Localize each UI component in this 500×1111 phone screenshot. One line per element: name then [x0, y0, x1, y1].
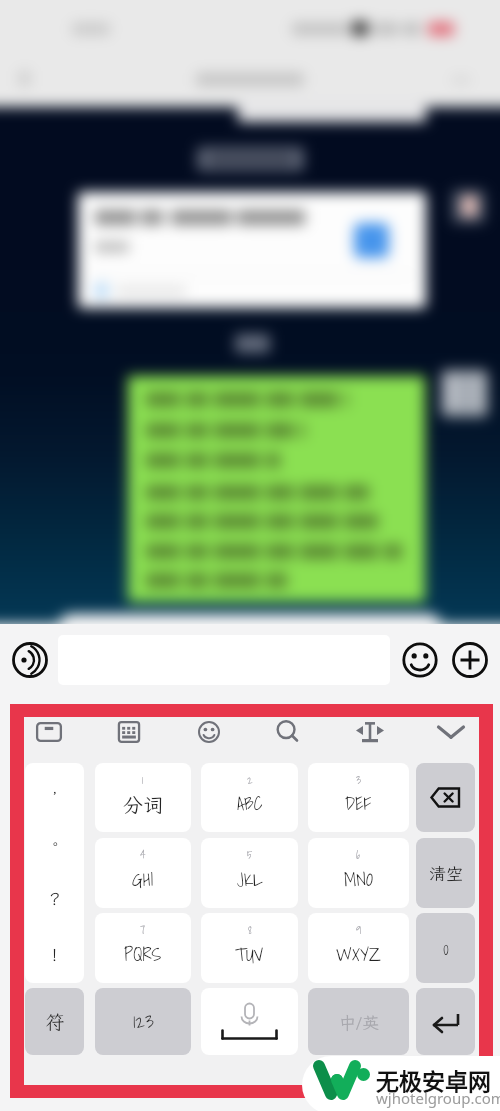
button[interactable]: Hide keyboard: [429, 710, 473, 754]
staticText: 分词: [123, 791, 163, 817]
staticText: WXYZ: [336, 940, 381, 969]
staticText: 2: [247, 771, 253, 789]
staticText: ？: [46, 887, 63, 909]
staticText: 。: [48, 836, 62, 853]
button[interactable]: Backspace: [416, 763, 475, 832]
staticText: PQRS: [124, 940, 162, 969]
button[interactable]: Space: [201, 988, 298, 1055]
button[interactable]: 7: [95, 913, 191, 983]
button[interactable]: 3: [308, 763, 409, 832]
staticText: wjhotelgroup.com: [376, 1088, 500, 1108]
button[interactable]: 1: [95, 763, 191, 832]
button[interactable]: Enter: [416, 988, 475, 1055]
staticText: 1: [142, 771, 144, 789]
button[interactable]: Emoji: [187, 710, 231, 754]
staticText: TUV: [235, 940, 264, 969]
staticText: ！: [46, 943, 63, 965]
button[interactable]: 2: [201, 763, 298, 832]
staticText: ，: [48, 785, 62, 802]
staticText: MNO: [344, 865, 373, 894]
staticText: GHI: [132, 865, 154, 894]
staticText: 8: [248, 921, 252, 939]
button[interactable]: Symbols: [25, 988, 84, 1055]
staticText: 无极安卓网: [376, 1063, 491, 1096]
staticText: 符: [45, 1009, 65, 1034]
button[interactable]: 中/英: [308, 988, 409, 1055]
staticText: 3: [356, 771, 362, 789]
button[interactable]: Punctuation: [25, 763, 84, 983]
button[interactable]: 8: [201, 913, 298, 983]
staticText: 清空: [429, 862, 463, 884]
staticText: 5: [247, 846, 253, 864]
staticText: JKL: [237, 865, 263, 894]
button[interactable]: Search: [266, 710, 310, 754]
button[interactable]: Emoji: [401, 641, 439, 679]
staticText: 6: [356, 846, 361, 864]
staticText: 中/英: [339, 1011, 379, 1033]
staticText: 123: [133, 1006, 154, 1037]
button[interactable]: 123: [95, 988, 191, 1055]
button[interactable]: Voice input: [11, 641, 49, 679]
button[interactable]: Notes: [27, 710, 71, 754]
staticText: 0: [443, 933, 449, 964]
staticText: 7: [140, 921, 146, 939]
staticText: DEF: [345, 789, 372, 818]
button[interactable]: 清空: [416, 838, 475, 908]
button[interactable]: 9: [308, 913, 409, 983]
staticText: ABC: [237, 789, 263, 818]
button[interactable]: 5: [201, 838, 298, 908]
button[interactable]: 6: [308, 838, 409, 908]
button[interactable]: More options: [451, 641, 489, 679]
button[interactable]: Keyboard layout: [107, 710, 151, 754]
button[interactable]: Move cursor: [348, 710, 392, 754]
button[interactable]: 0: [416, 913, 475, 983]
button[interactable]: 4: [95, 838, 191, 908]
staticText: 4: [140, 846, 146, 864]
staticText: 9: [356, 921, 362, 939]
